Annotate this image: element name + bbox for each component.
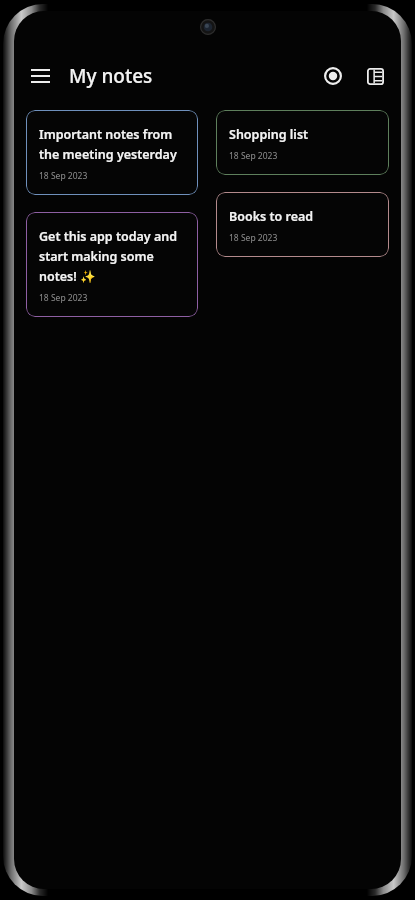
staticText: My notes bbox=[69, 63, 153, 89]
staticText: 18 Sep 2023 bbox=[39, 170, 88, 182]
button[interactable]: Change theme bbox=[313, 56, 353, 96]
staticText: 18 Sep 2023 bbox=[229, 150, 278, 162]
staticText: 18 Sep 2023 bbox=[229, 232, 278, 244]
button[interactable]: Change layout bbox=[355, 56, 395, 96]
staticText: Important notes from the meeting yesterd… bbox=[39, 126, 187, 163]
staticText: Books to read bbox=[229, 208, 314, 225]
button[interactable]: Books to read bbox=[216, 192, 389, 257]
staticText: Shopping list bbox=[229, 126, 309, 143]
staticText: 18 Sep 2023 bbox=[39, 292, 88, 304]
button[interactable]: Open navigation menu bbox=[20, 56, 60, 96]
staticText: Get this app today and start making some… bbox=[39, 228, 187, 285]
button[interactable]: Get this app today and start making some… bbox=[26, 212, 198, 317]
button[interactable]: Important notes from the meeting yesterd… bbox=[26, 110, 198, 195]
button[interactable]: Shopping list bbox=[216, 110, 389, 175]
